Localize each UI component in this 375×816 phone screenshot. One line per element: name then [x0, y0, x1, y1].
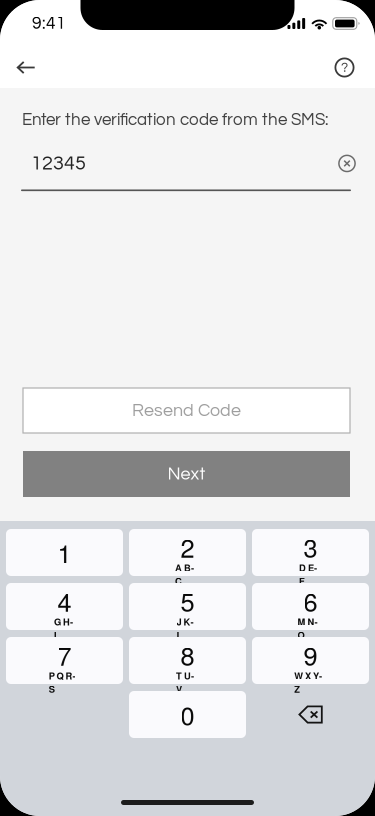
- staticText: 12345: [31, 153, 86, 174]
- staticText: Next: [167, 465, 205, 483]
- button[interactable]: 2: [129, 529, 246, 576]
- staticText: 8: [180, 637, 194, 673]
- staticText: 6: [303, 583, 317, 619]
- staticText: 7: [57, 637, 71, 673]
- button[interactable]: 4: [6, 583, 123, 630]
- button[interactable]: Delete: [252, 691, 369, 738]
- staticText: 4: [57, 583, 71, 619]
- button[interactable]: 3: [252, 529, 369, 576]
- button[interactable]: 8: [129, 637, 246, 684]
- button[interactable]: Clear: [328, 144, 366, 182]
- button[interactable]: Resend Code: [23, 388, 350, 433]
- button[interactable]: 9: [252, 637, 369, 684]
- staticText: GHI: [54, 615, 75, 628]
- button[interactable]: 0: [129, 691, 246, 738]
- staticText: DEF: [299, 561, 322, 574]
- staticText: TUV: [176, 669, 199, 682]
- button[interactable]: Next: [23, 451, 350, 497]
- staticText: 3: [303, 529, 317, 565]
- staticText: WXYZ: [294, 669, 327, 682]
- button[interactable]: 1: [6, 529, 123, 576]
- button[interactable]: 6: [252, 583, 369, 630]
- staticText: 9:41: [32, 15, 66, 32]
- staticText: 2: [180, 529, 194, 565]
- staticText: 0: [180, 696, 194, 733]
- staticText: MNO: [298, 615, 323, 628]
- staticText: Enter the verification code from the SMS…: [22, 111, 328, 128]
- staticText: PQRS: [49, 669, 80, 682]
- staticText: 1: [57, 534, 71, 571]
- button[interactable]: Back: [0, 45, 52, 89]
- staticText: 9: [303, 637, 317, 673]
- staticText: JKL: [177, 615, 198, 628]
- button[interactable]: 7: [6, 637, 123, 684]
- staticText: 5: [180, 583, 194, 619]
- staticText: ABC: [175, 561, 200, 574]
- button[interactable]: 5: [129, 583, 246, 630]
- staticText: Resend Code: [132, 401, 241, 420]
- staticText: ?: [341, 60, 348, 75]
- button[interactable]: Help: [322, 45, 367, 89]
